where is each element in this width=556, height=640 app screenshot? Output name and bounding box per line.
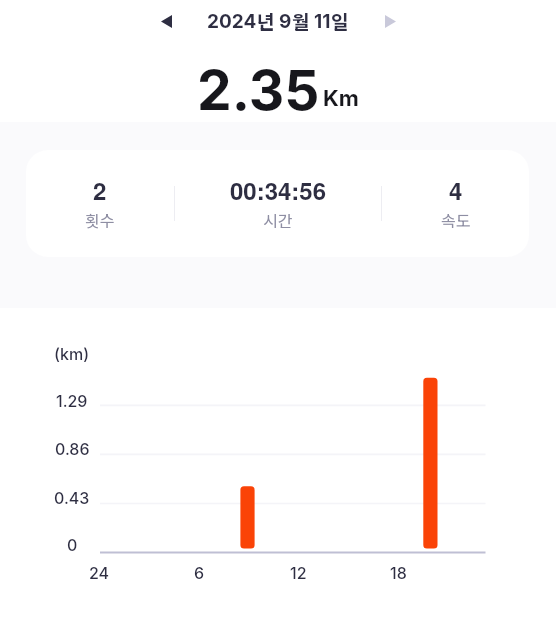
staticText: 0.86 [55, 439, 90, 458]
staticText: 0 [67, 535, 78, 554]
staticText: 2.35 [197, 57, 320, 124]
staticText: 년 [257, 7, 279, 35]
staticText: 12 [290, 563, 307, 582]
staticText: Km [323, 85, 359, 112]
button[interactable]: Previous day [149, 4, 183, 38]
staticText: 횟수 [85, 208, 115, 231]
staticText: (km) [54, 344, 90, 363]
staticText: 일 [331, 7, 349, 35]
staticText: 0.43 [54, 488, 90, 507]
button[interactable]: Next day [373, 4, 407, 38]
staticText: 월 [292, 7, 314, 35]
staticText: 18 [390, 563, 407, 582]
staticText: 11 [314, 10, 331, 33]
staticText: 2024 [207, 10, 257, 33]
staticText: 속도 [441, 208, 471, 231]
staticText: 시간 [263, 208, 293, 231]
staticText: 24 [89, 563, 110, 582]
staticText: 00:34:56 [230, 173, 327, 203]
staticText: 1.29 [56, 391, 88, 410]
staticText: 9 [279, 10, 292, 33]
staticText: 4 [449, 173, 463, 203]
staticText: 6 [194, 563, 205, 582]
staticText: 2 [93, 173, 107, 203]
